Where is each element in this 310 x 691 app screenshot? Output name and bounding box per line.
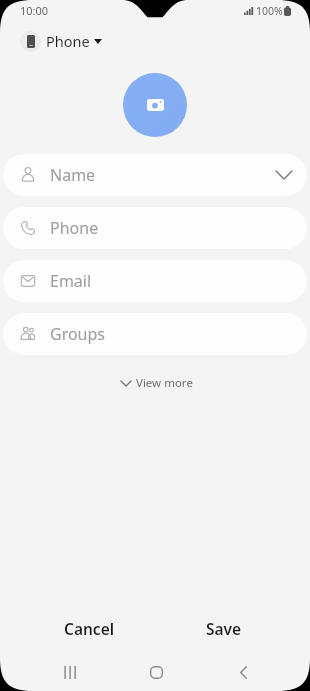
button[interactable]: Email [3,260,307,302]
staticText: Phone [50,217,99,239]
button[interactable]: Back [224,654,263,690]
button[interactable]: Phone [20,28,108,54]
button[interactable]: Save [186,611,261,646]
staticText: Name [50,164,96,186]
button[interactable]: View more [111,371,203,395]
staticText: View more [136,375,193,391]
staticText: Email [50,270,92,292]
button[interactable]: Cancel [52,611,127,646]
button[interactable]: Recent apps [50,654,89,690]
button[interactable]: Add photo [123,73,187,137]
button[interactable]: Home [137,654,176,690]
button[interactable]: Name [3,154,307,196]
staticText: Save [206,618,242,639]
button[interactable]: Phone [3,207,307,249]
button[interactable]: Groups [3,313,307,355]
staticText: Phone [46,31,90,51]
staticText: Groups [50,323,106,345]
staticText: 100% [256,4,283,18]
staticText: Cancel [64,618,115,639]
staticText: 10:00 [20,3,49,18]
